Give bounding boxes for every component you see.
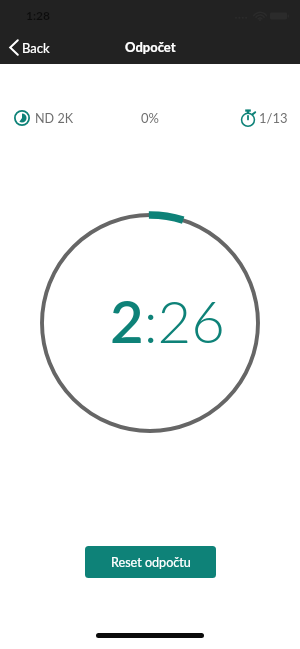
other: Timer: [236, 109, 255, 127]
staticText: Odpočet: [125, 39, 176, 55]
staticText: Back: [22, 40, 50, 56]
staticText: 1:28: [26, 8, 50, 22]
staticText: Reset odpočtu: [111, 555, 191, 570]
staticText: 0%: [141, 110, 159, 126]
staticText: 2:26: [110, 286, 225, 356]
button[interactable]: Reset odpočtu: [85, 546, 216, 578]
staticText: ND 2K: [35, 111, 74, 126]
other: ND filter: [14, 110, 30, 126]
button[interactable]: Back: [0, 35, 60, 60]
staticText: 1/13: [259, 110, 288, 126]
